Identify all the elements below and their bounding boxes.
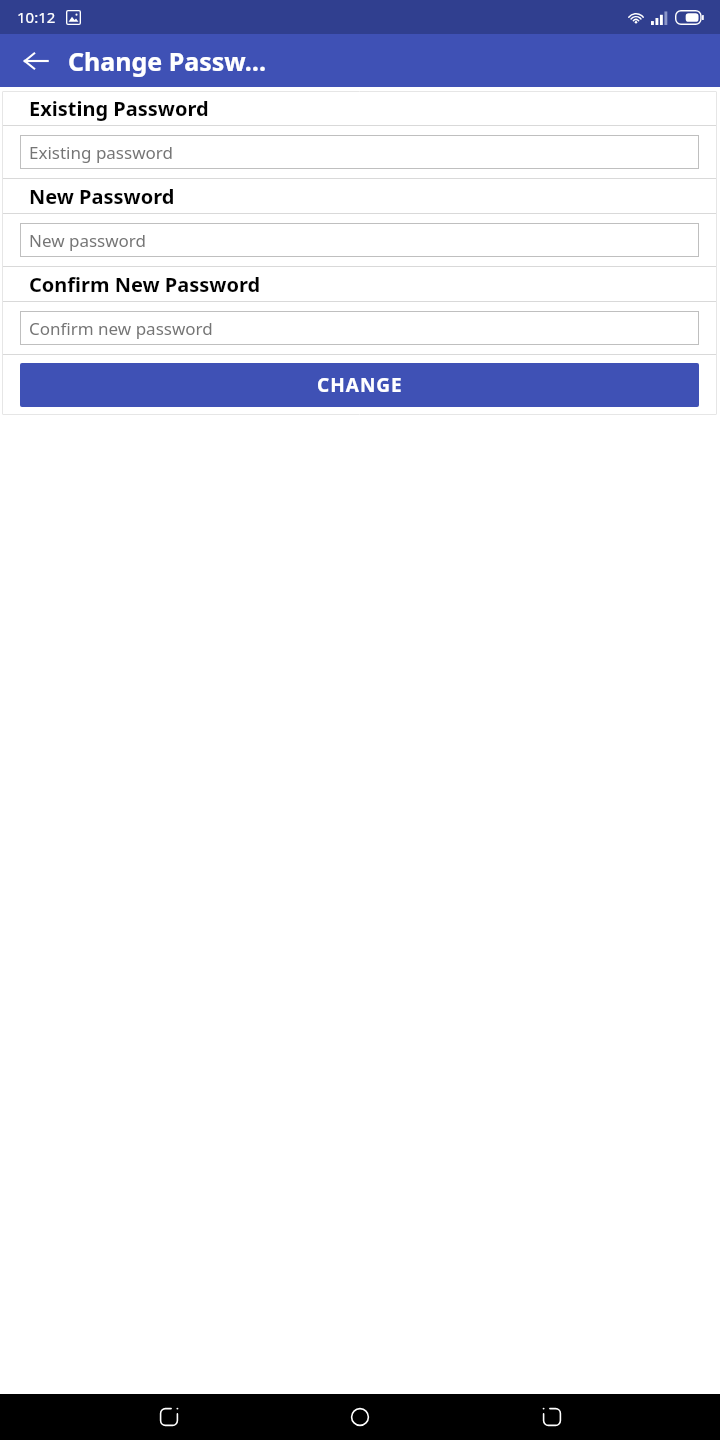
button[interactable]: Recents bbox=[146, 1394, 192, 1440]
button[interactable]: Home bbox=[337, 1394, 383, 1440]
staticText: Existing Password bbox=[29, 95, 209, 122]
staticText: CHANGE bbox=[317, 372, 403, 398]
staticText: 10:12 bbox=[17, 7, 56, 27]
staticText: Confirm new password bbox=[29, 317, 213, 340]
button[interactable]: Confirm new password bbox=[20, 311, 699, 345]
button[interactable]: CHANGE bbox=[20, 363, 699, 407]
staticText: Existing password bbox=[29, 141, 173, 164]
staticText: New password bbox=[29, 229, 147, 252]
button[interactable]: Back bbox=[14, 39, 58, 83]
button[interactable]: New password bbox=[20, 223, 699, 257]
button[interactable]: Existing password bbox=[20, 135, 699, 169]
button[interactable]: Back bbox=[529, 1394, 575, 1440]
staticText: Change Passw… bbox=[68, 44, 267, 78]
staticText: Confirm New Password bbox=[29, 271, 261, 298]
staticText: New Password bbox=[29, 183, 175, 210]
